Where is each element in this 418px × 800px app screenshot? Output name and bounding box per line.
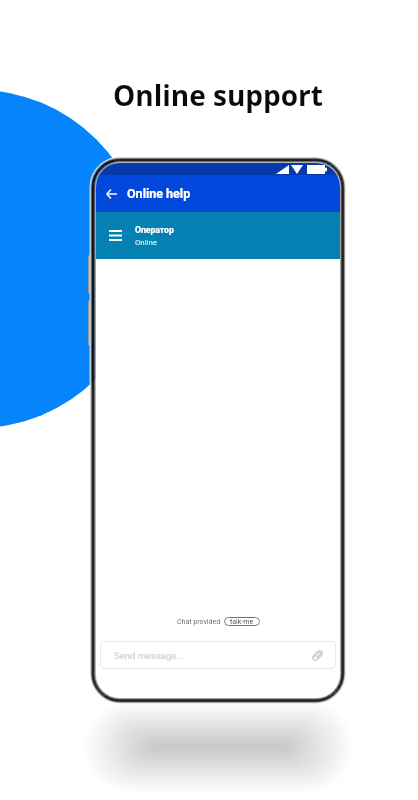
- other: Attach file: [311, 649, 324, 662]
- button[interactable]: Back: [100, 183, 122, 205]
- staticText: talk-me: [230, 618, 254, 626]
- button[interactable]: talk-me: [224, 617, 260, 626]
- button[interactable]: Send message...: [100, 641, 336, 669]
- staticText: Send message...: [114, 650, 184, 661]
- staticText: Online support: [113, 76, 323, 114]
- staticText: Chat provided: [177, 618, 221, 626]
- staticText: Online: [135, 238, 157, 247]
- staticText: Оператор: [135, 225, 174, 235]
- staticText: Online help: [127, 186, 191, 201]
- button[interactable]: Menu: [96, 212, 340, 259]
- other: Menu: [109, 230, 122, 241]
